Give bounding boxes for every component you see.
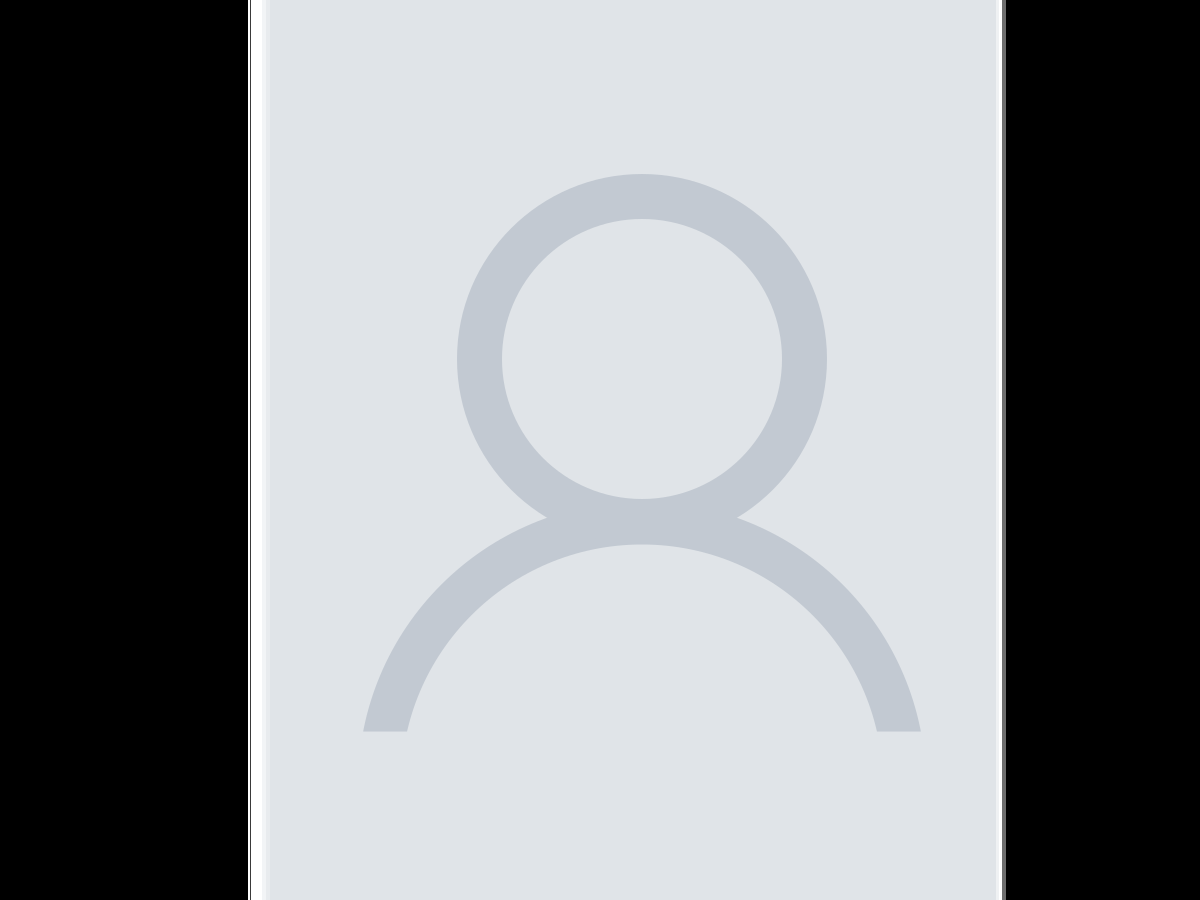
- button[interactable]: Contact photo placeholder: [248, 0, 1006, 900]
